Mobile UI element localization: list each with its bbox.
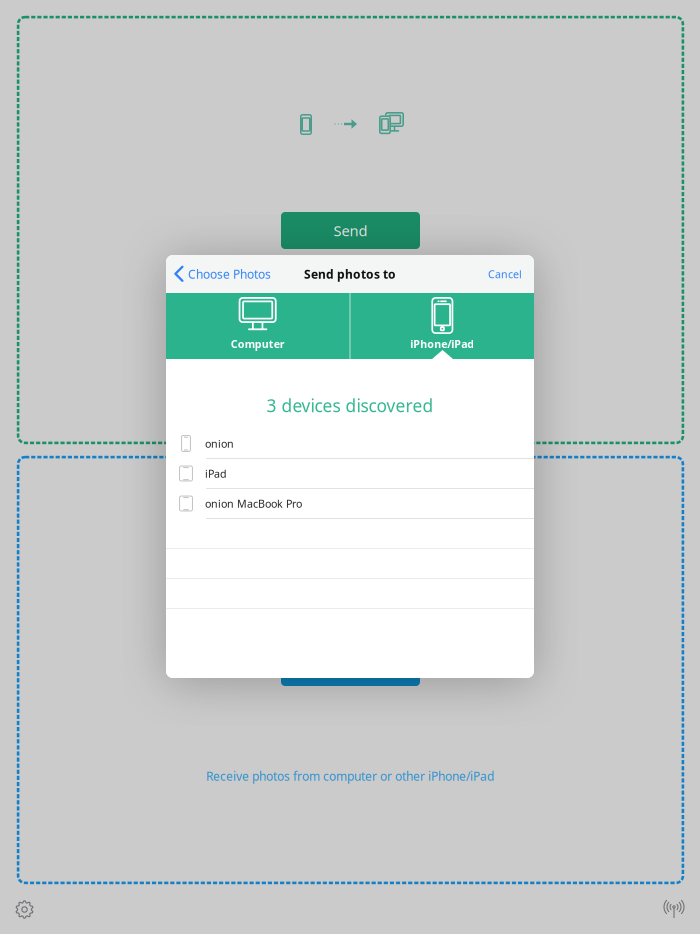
- button[interactable]: iPhone/iPad: [351, 293, 534, 359]
- staticText: iPhone/iPad: [410, 337, 474, 351]
- staticText: Receive photos from computer or other iP…: [206, 768, 494, 784]
- button[interactable]: Discoverability: [662, 899, 686, 919]
- button[interactable]: iPad: [166, 459, 534, 489]
- button[interactable]: Computer: [166, 293, 349, 359]
- staticText: iPad: [205, 466, 227, 481]
- button[interactable]: Send: [281, 212, 420, 249]
- staticText: Computer: [231, 337, 285, 351]
- button[interactable]: Receive: [281, 649, 420, 686]
- staticText: onion: [205, 436, 234, 451]
- button[interactable]: Settings: [15, 900, 34, 919]
- button[interactable]: onion: [166, 429, 534, 459]
- staticText: Send photos to: [304, 266, 396, 282]
- staticText: onion MacBook Pro: [205, 496, 302, 511]
- staticText: Send: [333, 221, 367, 240]
- staticText: Cancel: [488, 267, 522, 281]
- button[interactable]: Cancel: [476, 255, 534, 293]
- staticText: Choose Photos: [188, 266, 271, 282]
- button[interactable]: onion MacBook Pro: [166, 489, 534, 519]
- button[interactable]: Choose Photos: [166, 255, 279, 293]
- staticText: 3 devices discovered: [266, 394, 433, 417]
